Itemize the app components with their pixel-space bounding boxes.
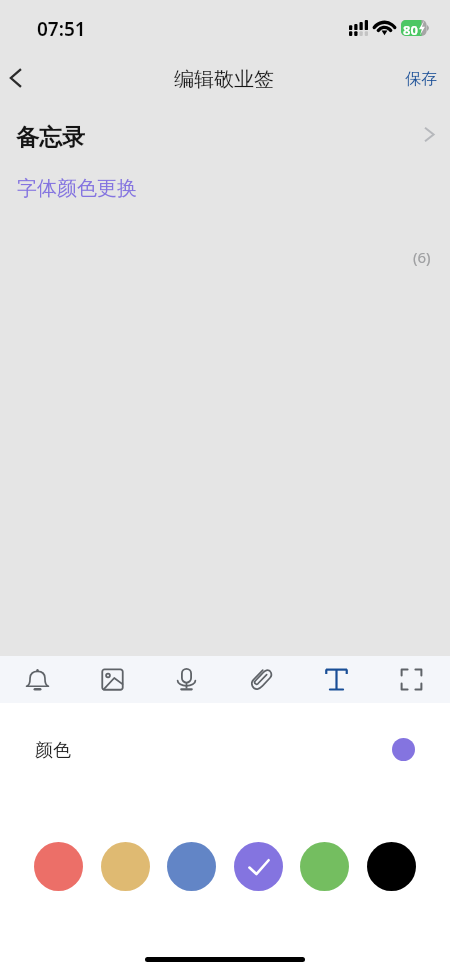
button[interactable]: Colour 2 [101,842,150,891]
button[interactable]: Colour 6 [367,842,416,891]
staticText: 编辑敬业签 [174,67,274,92]
staticText: (6) [413,247,431,267]
staticText: 颜色 [35,739,71,762]
button[interactable]: Current colour [392,738,415,761]
staticText: 保存 [405,69,437,89]
button[interactable]: Reminder [14,656,61,703]
staticText: 80 [403,21,418,37]
button[interactable]: Text format [313,656,360,703]
button[interactable]: Colour 1 [34,842,83,891]
button[interactable]: Colour 5 [300,842,349,891]
button[interactable]: Colour 3 [167,842,216,891]
staticText: 07:51 [37,16,86,42]
button[interactable]: Fullscreen [388,656,435,703]
button[interactable]: Note content [0,160,450,656]
button[interactable]: Back [0,54,48,102]
staticText: 备忘录 [16,123,85,152]
button[interactable]: Image [89,656,136,703]
button[interactable]: Open note list [406,117,444,153]
staticText: 字体颜色更换 [17,176,137,201]
button[interactable]: Attachment [238,656,285,703]
button[interactable]: 保存 [396,61,446,97]
button[interactable]: Colour 4 [234,842,283,891]
button[interactable]: Voice [163,656,210,703]
